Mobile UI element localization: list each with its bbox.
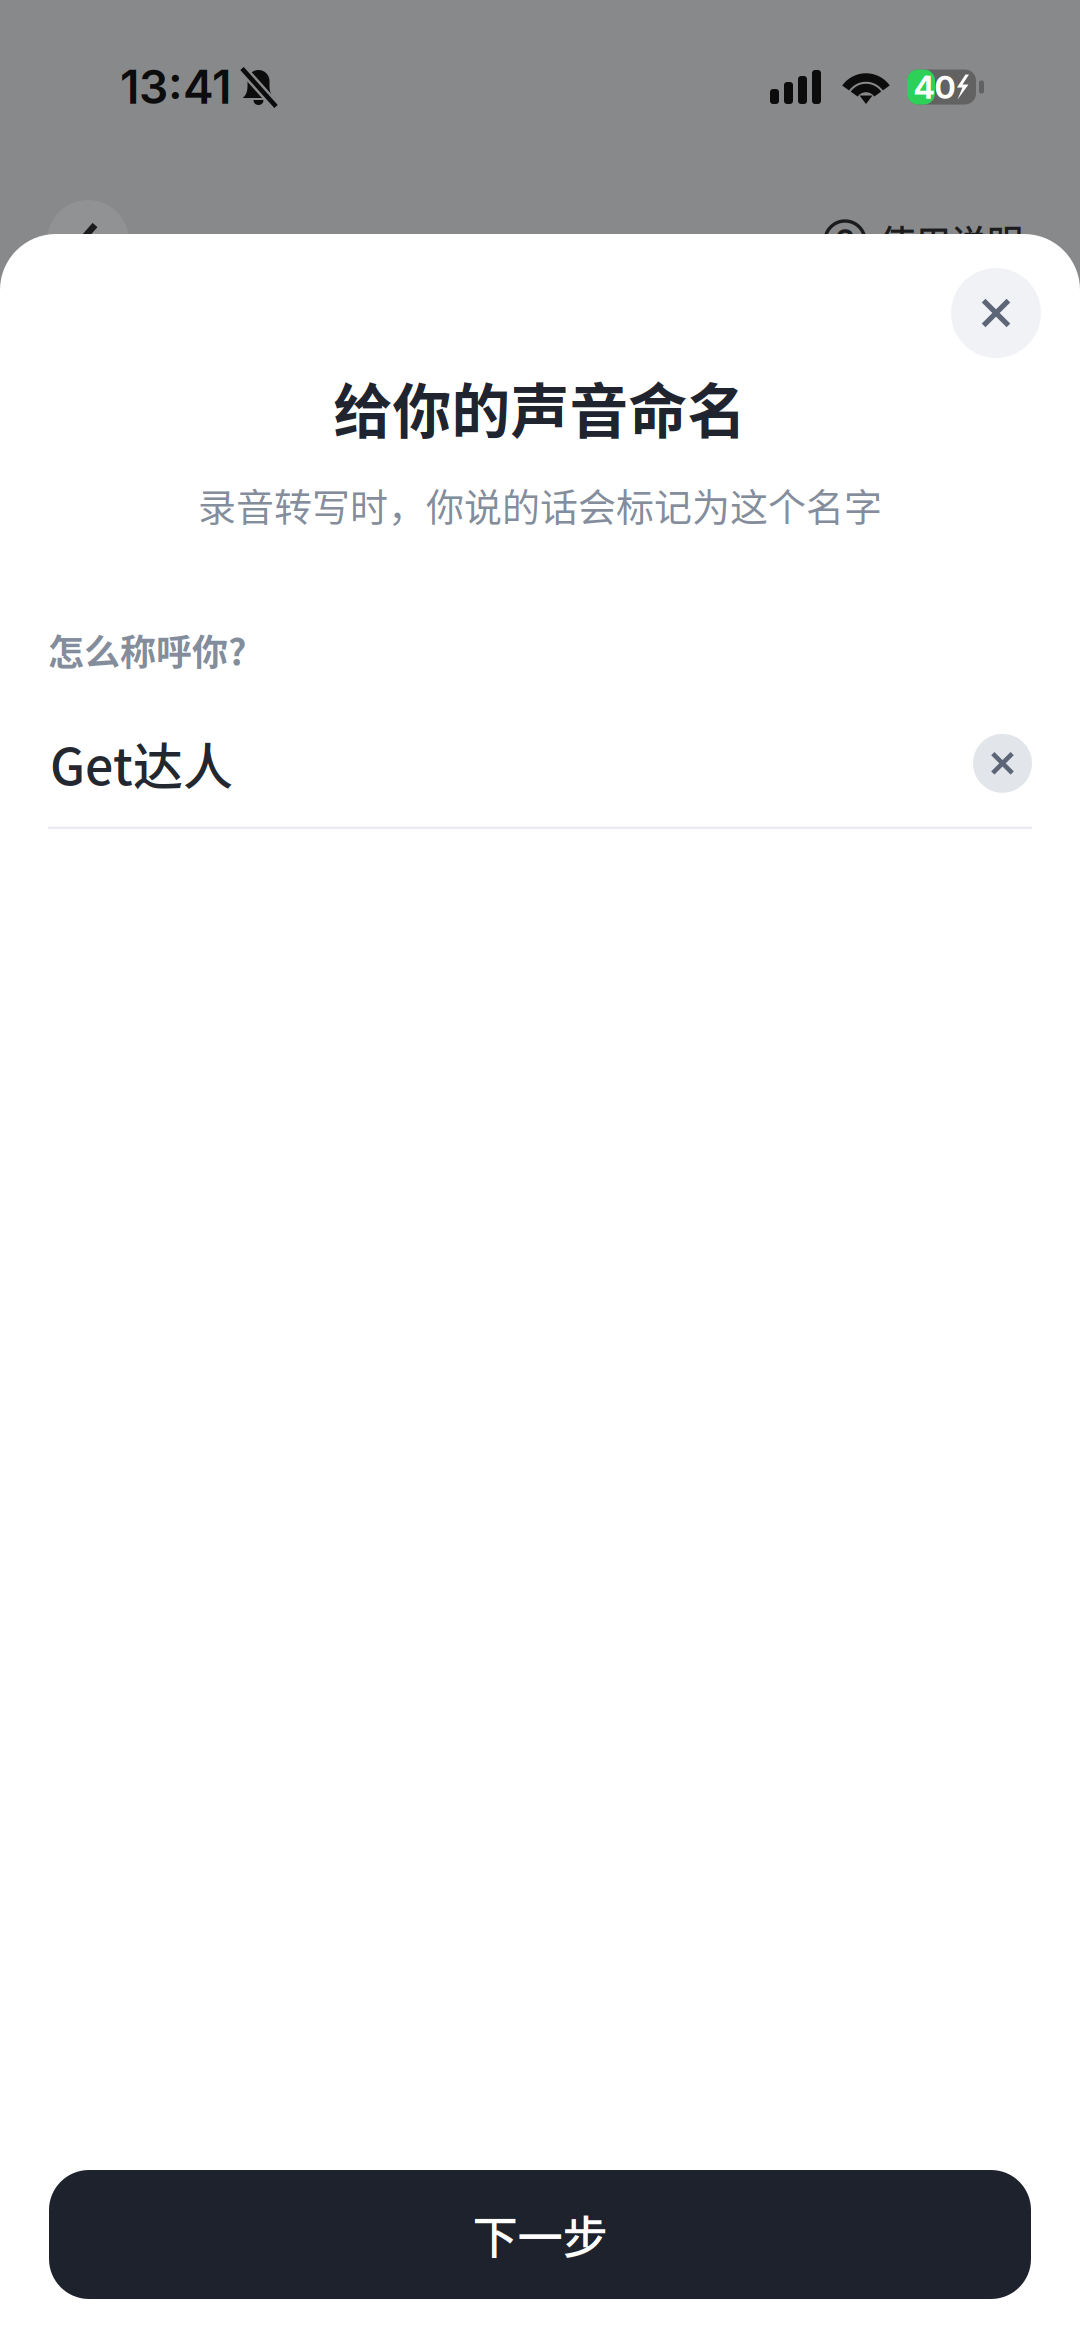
button[interactable]: Clear text [973, 734, 1032, 793]
button[interactable]: ? [825, 215, 1023, 267]
staticText: 下一步 [472, 2202, 607, 2267]
staticText: 40 [913, 68, 955, 106]
staticText: Get达人 [50, 727, 233, 799]
staticText: 13:41 [120, 59, 231, 115]
button[interactable]: 下一步 [49, 2170, 1031, 2299]
staticText: ? [836, 221, 854, 261]
staticText: 怎么称呼你? [48, 624, 247, 676]
staticText: 给你的声音命名 [333, 365, 746, 450]
button[interactable]: Back [47, 200, 129, 282]
button[interactable]: Close [951, 268, 1041, 358]
staticText: 录音转写时，你说的话会标记为这个名字 [198, 477, 882, 532]
staticText: 使用说明 [879, 215, 1023, 267]
